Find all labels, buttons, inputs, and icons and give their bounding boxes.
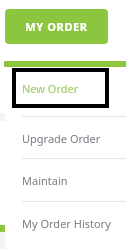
button[interactable]: Maintain [5,159,132,201]
staticText: Upgrade Order [22,131,101,146]
staticText: MY ORDER [25,19,88,34]
staticText: New Order [22,81,79,96]
button[interactable]: My Order History [5,202,132,244]
staticText: Maintain [22,173,68,188]
staticText: My Order History [22,216,111,231]
button[interactable]: New Order [16,72,105,104]
button[interactable]: Upgrade Order [5,117,132,159]
button[interactable]: MY ORDER [5,9,108,44]
